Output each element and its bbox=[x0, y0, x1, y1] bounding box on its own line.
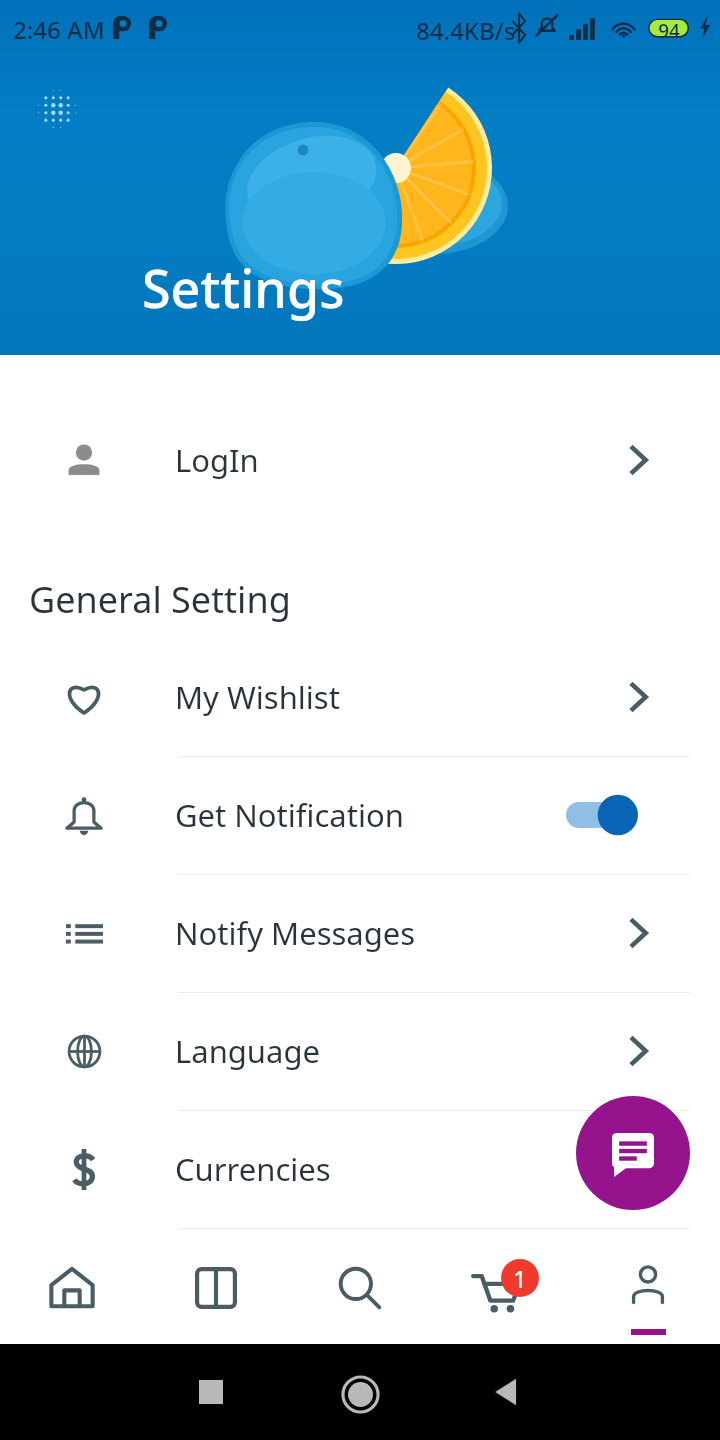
staticText: 84.4KB/s bbox=[416, 14, 516, 47]
staticText: 94 bbox=[656, 18, 682, 44]
button[interactable]: LogIn bbox=[0, 405, 720, 515]
button[interactable]: Get Notification bbox=[0, 756, 720, 874]
button[interactable]: Language bbox=[0, 992, 720, 1110]
button[interactable]: Messages bbox=[576, 1096, 690, 1210]
button[interactable]: My Wishlist bbox=[0, 638, 720, 756]
staticText: Language bbox=[175, 1030, 320, 1072]
button[interactable]: Notify Messages bbox=[0, 874, 720, 992]
staticText: Notify Messages bbox=[175, 912, 416, 954]
button[interactable]: Home bbox=[0, 1232, 144, 1344]
staticText: 2:46 AM bbox=[13, 13, 105, 46]
button[interactable]: Profile bbox=[576, 1232, 720, 1344]
button[interactable]: Cart bbox=[432, 1232, 576, 1344]
staticText: 1 bbox=[513, 1262, 527, 1295]
staticText: Currencies bbox=[175, 1148, 331, 1190]
staticText: LogIn bbox=[175, 439, 259, 481]
button[interactable]: Search bbox=[288, 1232, 432, 1344]
staticText: General Setting bbox=[29, 575, 291, 624]
button[interactable]: Toggle notifications bbox=[566, 794, 638, 836]
button[interactable]: Categories bbox=[144, 1232, 288, 1344]
staticText: Settings bbox=[142, 252, 345, 323]
staticText: My Wishlist bbox=[175, 676, 340, 718]
staticText: Get Notification bbox=[175, 794, 404, 836]
button[interactable]: Currencies bbox=[0, 1110, 720, 1228]
